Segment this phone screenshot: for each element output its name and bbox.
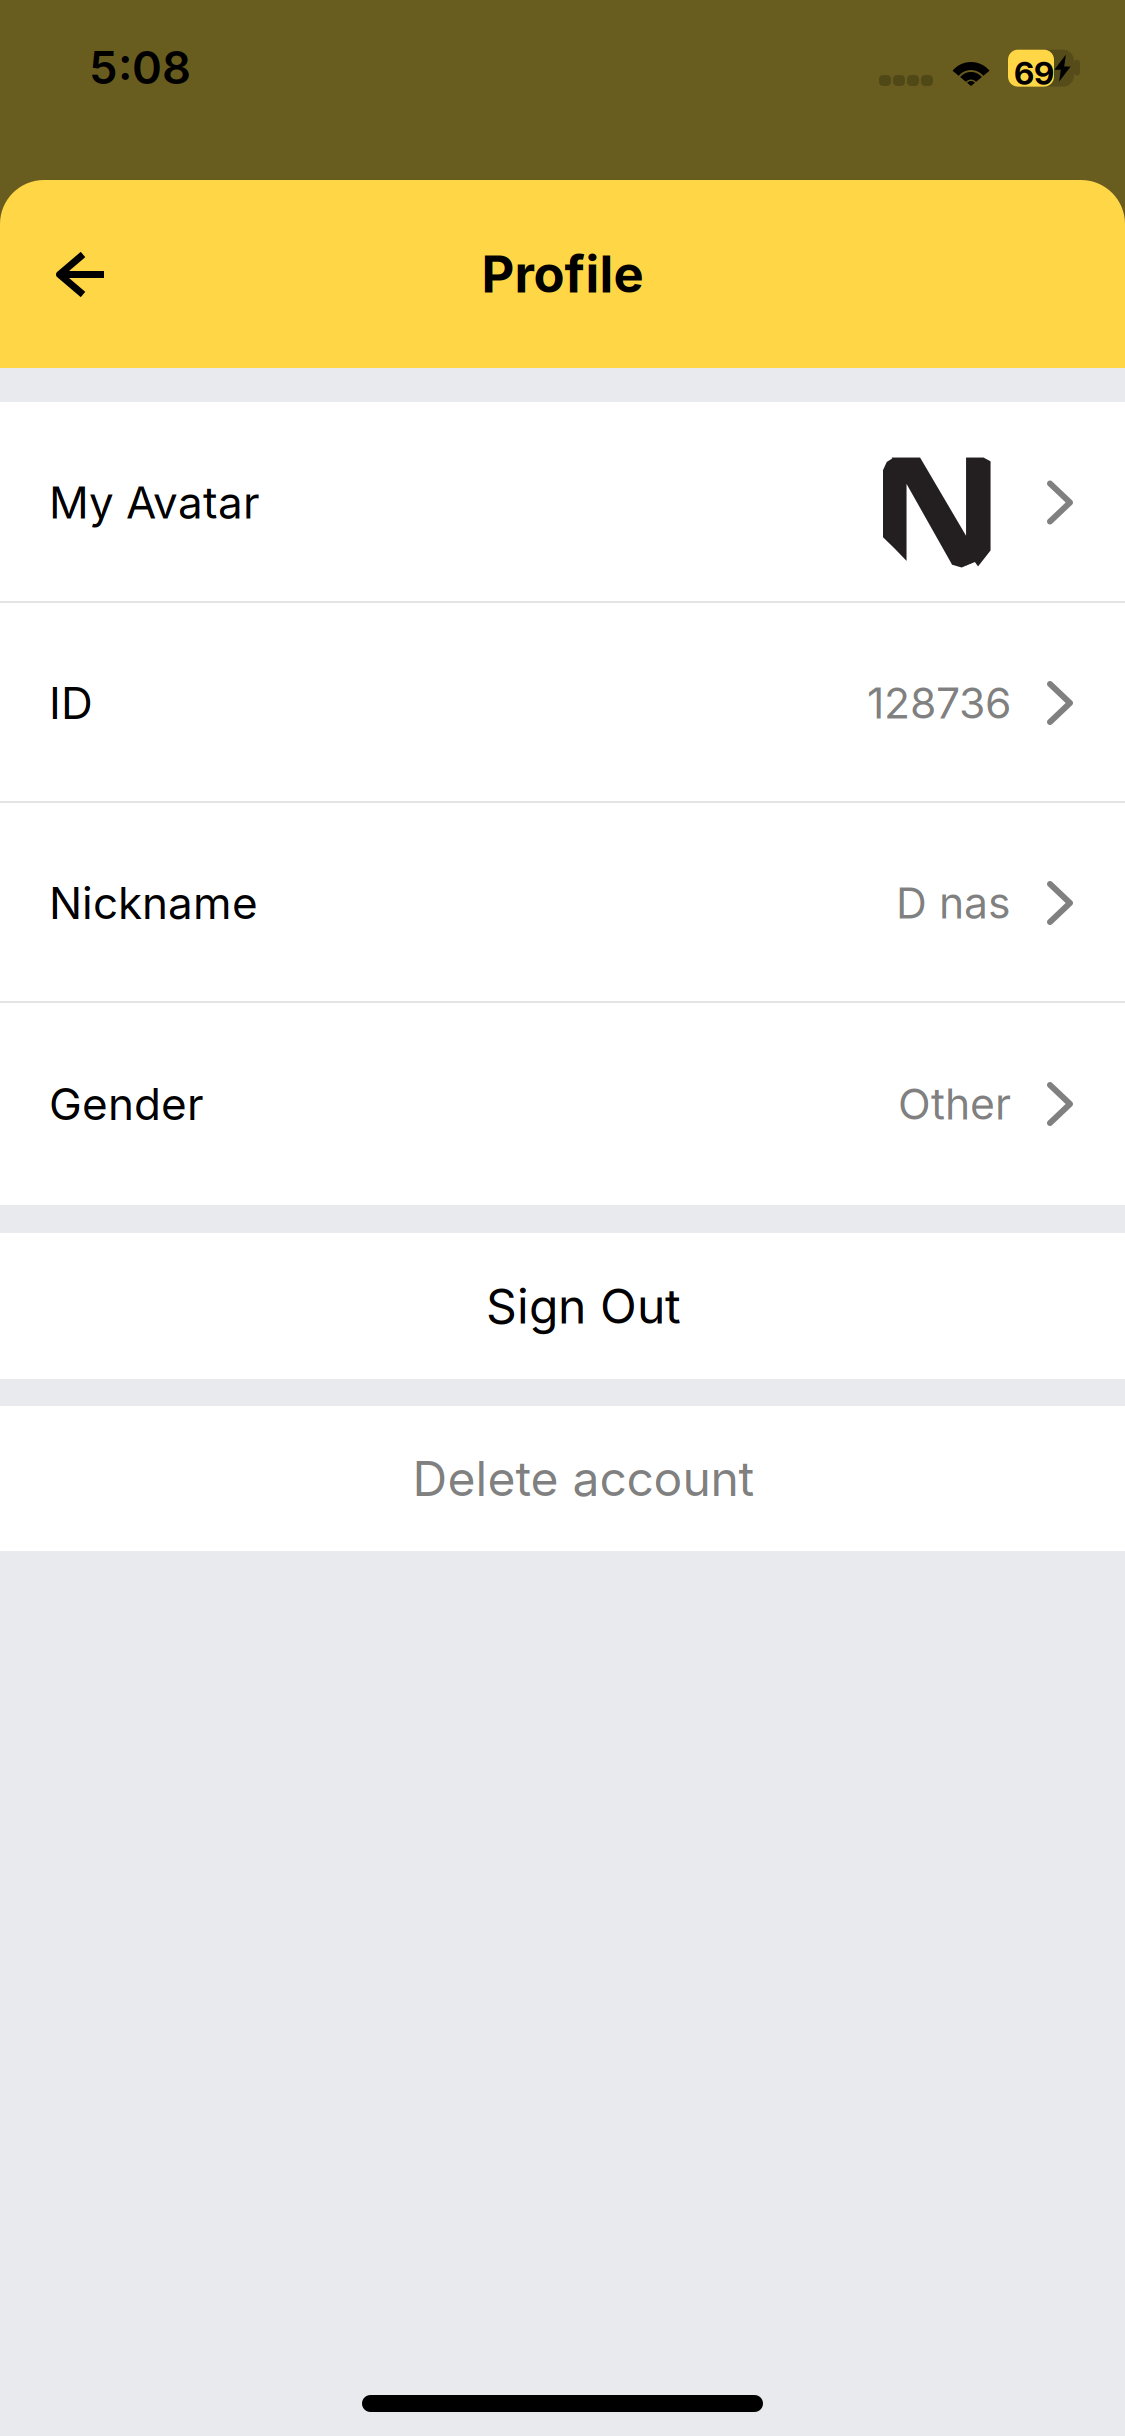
- button[interactable]: Gender: [0, 1003, 1125, 1205]
- staticText: My Avatar: [49, 476, 260, 529]
- staticText: 5:08: [89, 40, 191, 95]
- staticText: Delete account: [412, 1449, 754, 1508]
- staticText: D nas: [896, 877, 1011, 929]
- staticText: 128736: [867, 677, 1011, 729]
- staticText: Nickname: [49, 876, 258, 930]
- button[interactable]: My Avatar: [0, 402, 1125, 603]
- staticText: Profile: [481, 243, 643, 305]
- button[interactable]: Sign Out: [0, 1233, 1125, 1379]
- staticText: 69: [1014, 54, 1054, 92]
- staticText: Sign Out: [486, 1277, 681, 1335]
- button[interactable]: Delete account: [0, 1406, 1125, 1551]
- button[interactable]: Back: [0, 180, 160, 368]
- staticText: ID: [49, 676, 93, 730]
- button[interactable]: Nickname: [0, 803, 1125, 1003]
- staticText: Other: [898, 1078, 1011, 1130]
- button[interactable]: ID: [0, 603, 1125, 803]
- staticText: Gender: [49, 1077, 204, 1131]
